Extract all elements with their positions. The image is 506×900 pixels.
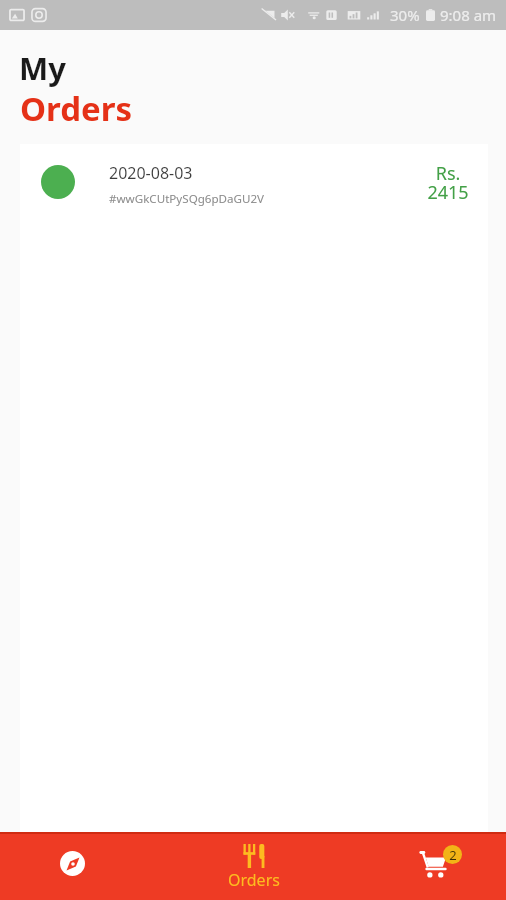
button[interactable]: Cart, 2 items [406,830,476,892]
staticText: Orders [228,869,280,891]
staticText: Orders [20,86,133,131]
staticText: 9:08 am [440,5,497,25]
button[interactable]: Explore [47,833,98,895]
staticText: 2 [449,846,457,864]
staticText: My [19,47,66,89]
staticText: #wwGkCUtPySQg6pDaGU2V [109,191,265,207]
staticText: 2020-08-03 [109,162,193,184]
staticText: 30% [390,5,420,25]
staticText: Rs. 2415 [427,161,469,204]
button[interactable]: 2020-08-03 [20,144,488,219]
button[interactable]: Orders [213,836,294,900]
